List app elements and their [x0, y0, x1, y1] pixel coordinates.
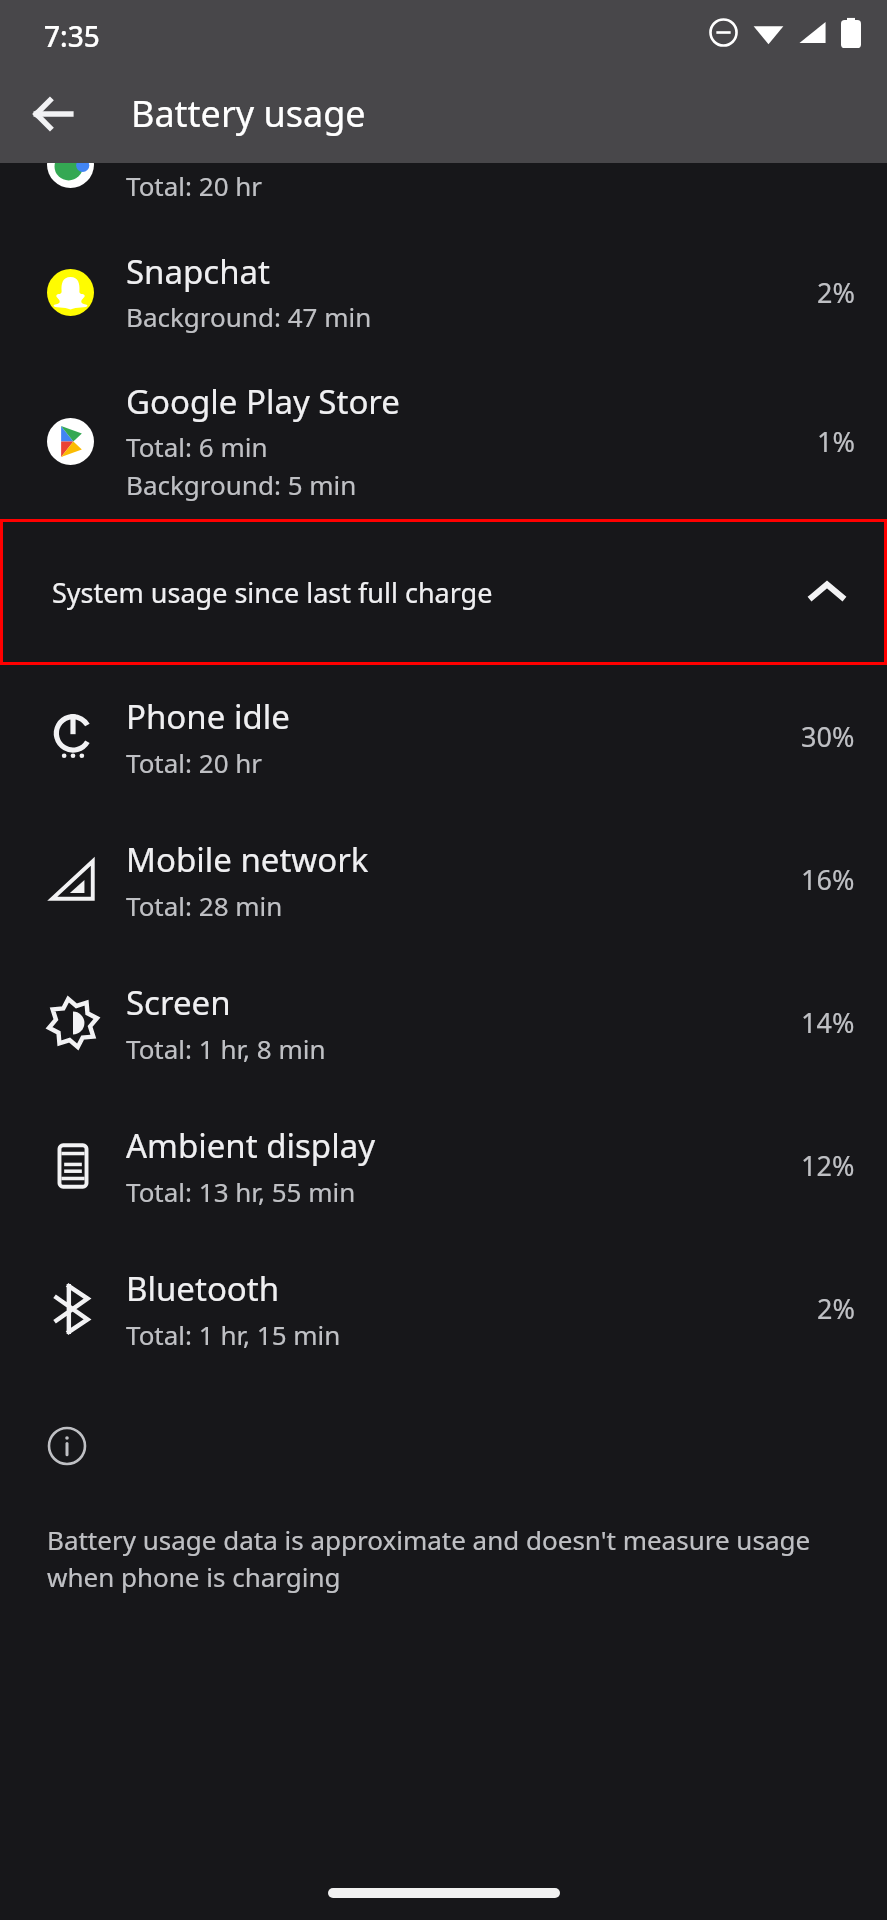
staticText: Battery usage	[131, 89, 366, 138]
staticText: Background: 47 min	[126, 299, 372, 334]
staticText: Battery usage data is approximate and do…	[47, 1522, 842, 1595]
staticText: 12%	[801, 1147, 855, 1184]
staticText: Total: 13 hr, 55 min	[126, 1174, 356, 1209]
staticText: 2%	[817, 274, 855, 311]
staticText: Google Play Store	[126, 379, 400, 424]
staticText: Total: 20 hr	[126, 745, 263, 780]
staticText: Bluetooth	[126, 1266, 280, 1311]
button[interactable]: Back	[22, 83, 84, 145]
button[interactable]: System usage since last full charge	[0, 519, 887, 665]
staticText: System usage since last full charge	[52, 574, 493, 611]
button[interactable]: Mobile network	[0, 808, 887, 951]
staticText: Total: 28 min	[126, 888, 283, 923]
staticText: Background: 5 min	[126, 467, 357, 502]
staticText: 30%	[801, 718, 855, 755]
staticText: Phone idle	[126, 694, 290, 739]
staticText: Snapchat	[126, 249, 270, 294]
staticText: Screen	[126, 980, 231, 1025]
button[interactable]: Google Play Store	[0, 364, 887, 519]
button[interactable]: Ambient display	[0, 1094, 887, 1237]
staticText: Ambient display	[126, 1123, 376, 1168]
button[interactable]: Snapchat	[0, 221, 887, 364]
staticText: 1%	[817, 423, 855, 460]
staticText: Mobile network	[126, 837, 369, 882]
button[interactable]: Bluetooth	[0, 1237, 887, 1380]
staticText: Total: 20 hr	[126, 168, 263, 203]
button[interactable]: Phone idle	[0, 665, 887, 808]
staticText: Total: 1 hr, 8 min	[126, 1031, 326, 1066]
staticText: 2%	[817, 1290, 855, 1327]
staticText: Total: 1 hr, 15 min	[126, 1317, 341, 1352]
other: Collapse	[799, 564, 855, 620]
staticText: 16%	[801, 861, 855, 898]
staticText: Total: 6 min	[126, 429, 268, 464]
staticText: 14%	[801, 1004, 855, 1041]
staticText: 7:35	[44, 17, 100, 55]
button[interactable]: Screen	[0, 951, 887, 1094]
